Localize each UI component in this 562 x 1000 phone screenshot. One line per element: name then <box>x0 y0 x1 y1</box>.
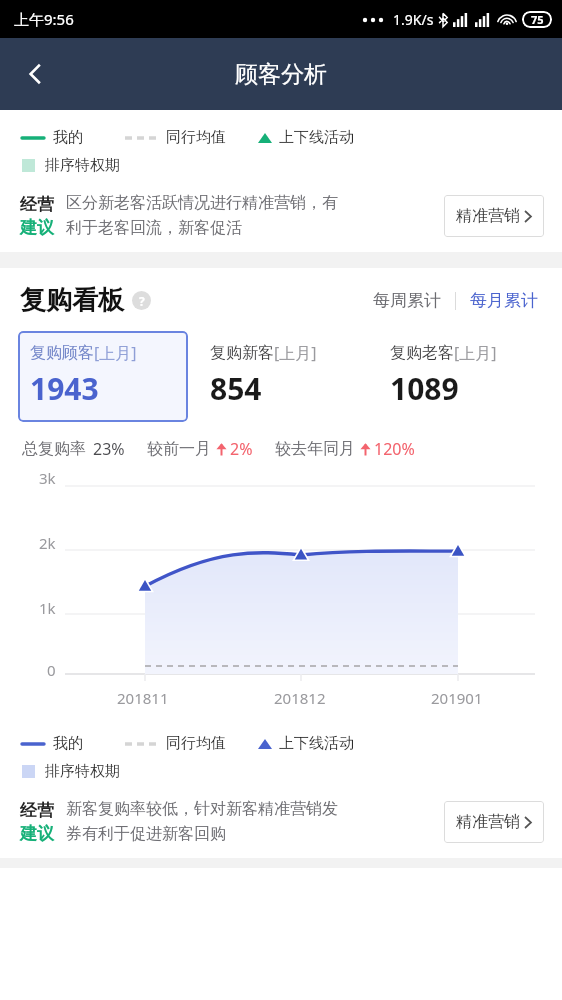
staticText: 201811 <box>117 688 169 708</box>
staticText: 区分新老客活跃情况进行精准营销，有 <box>66 193 338 213</box>
staticText: [上月] <box>274 342 317 364</box>
staticText: 排序特权期 <box>45 762 120 781</box>
staticText: 利于老客回流，新客促活 <box>66 218 242 238</box>
staticText: 每周累计 <box>373 290 441 311</box>
staticText: 2k <box>39 533 56 553</box>
button[interactable]: 每月累计 <box>466 284 542 317</box>
staticText: 较前一月 <box>147 439 211 459</box>
staticText: 1943 <box>30 368 99 409</box>
staticText: 上下线活动 <box>279 734 354 753</box>
staticText: ? <box>139 293 145 309</box>
staticText: 同行均值 <box>166 128 226 147</box>
staticText: 顾客分析 <box>235 60 327 89</box>
staticText: 1.9K/s <box>393 10 434 29</box>
staticText: 201812 <box>274 688 326 708</box>
staticText: 854 <box>210 368 262 409</box>
staticText: 复购看板 <box>20 284 124 317</box>
staticText: 经营 <box>20 194 54 215</box>
staticText: 我的 <box>53 128 83 147</box>
staticText: 201901 <box>431 688 483 708</box>
staticText: 精准营销 <box>456 812 520 832</box>
button[interactable]: 帮助 <box>132 291 151 310</box>
button[interactable]: 复购老客 <box>378 331 548 422</box>
button[interactable]: 每周累计 <box>369 284 445 317</box>
staticText: 我的 <box>53 734 83 753</box>
staticText: 总复购率 <box>22 439 86 459</box>
staticText: 2% <box>230 438 253 460</box>
staticText: 复购顾客 <box>30 343 94 363</box>
staticText: 0 <box>47 660 56 680</box>
staticText: 3k <box>39 468 56 488</box>
staticText: 上下线活动 <box>279 128 354 147</box>
staticText: 每月累计 <box>470 290 538 311</box>
staticText: 建议 <box>20 823 54 844</box>
button[interactable]: 精准营销 <box>444 195 544 237</box>
staticText: 75 <box>531 12 544 27</box>
staticText: 券有利于促进新客回购 <box>66 824 226 844</box>
staticText: 经营 <box>20 800 54 821</box>
button[interactable]: 返回 <box>8 47 62 101</box>
staticText: 同行均值 <box>166 734 226 753</box>
staticText: 建议 <box>20 217 54 238</box>
button[interactable]: 精准营销 <box>444 801 544 843</box>
staticText: 120% <box>374 438 415 460</box>
staticText: 23% <box>93 438 125 460</box>
staticText: 上午9:56 <box>14 9 74 29</box>
staticText: 较去年同月 <box>275 439 355 459</box>
staticText: 1k <box>39 598 56 618</box>
staticText: [上月] <box>94 342 137 364</box>
button[interactable]: 复购顾客 <box>18 331 188 422</box>
staticText: 复购新客 <box>210 343 274 363</box>
staticText: 新客复购率较低，针对新客精准营销发 <box>66 799 338 819</box>
staticText: 精准营销 <box>456 206 520 226</box>
staticText: 排序特权期 <box>45 156 120 175</box>
staticText: [上月] <box>454 342 497 364</box>
staticText: 复购老客 <box>390 343 454 363</box>
button[interactable]: 复购新客 <box>198 331 368 422</box>
staticText: 1089 <box>390 368 459 409</box>
